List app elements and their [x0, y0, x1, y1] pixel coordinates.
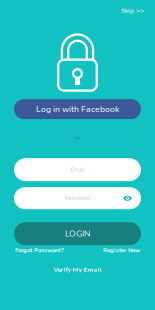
staticText: Forgot Password? [15, 246, 64, 254]
staticText: Email [70, 166, 84, 173]
staticText: Log in with Facebook [36, 103, 119, 115]
button[interactable]: Password [14, 187, 141, 209]
button[interactable]: Register Now [103, 245, 140, 258]
button[interactable]: Skip >> [110, 1, 155, 20]
button[interactable]: Forgot Password? [15, 245, 64, 258]
button[interactable]: Email [14, 158, 141, 181]
button[interactable]: Verify My Email [53, 261, 101, 278]
button[interactable]: Log in with Facebook [14, 99, 141, 119]
button[interactable]: LOGIN [14, 222, 141, 245]
staticText: Verify My Email [53, 265, 101, 274]
staticText: or [74, 133, 80, 142]
staticText: LOGIN [65, 228, 90, 240]
staticText: Skip >> [121, 6, 144, 15]
staticText: Register Now [103, 246, 140, 254]
staticText: Password [65, 194, 90, 202]
